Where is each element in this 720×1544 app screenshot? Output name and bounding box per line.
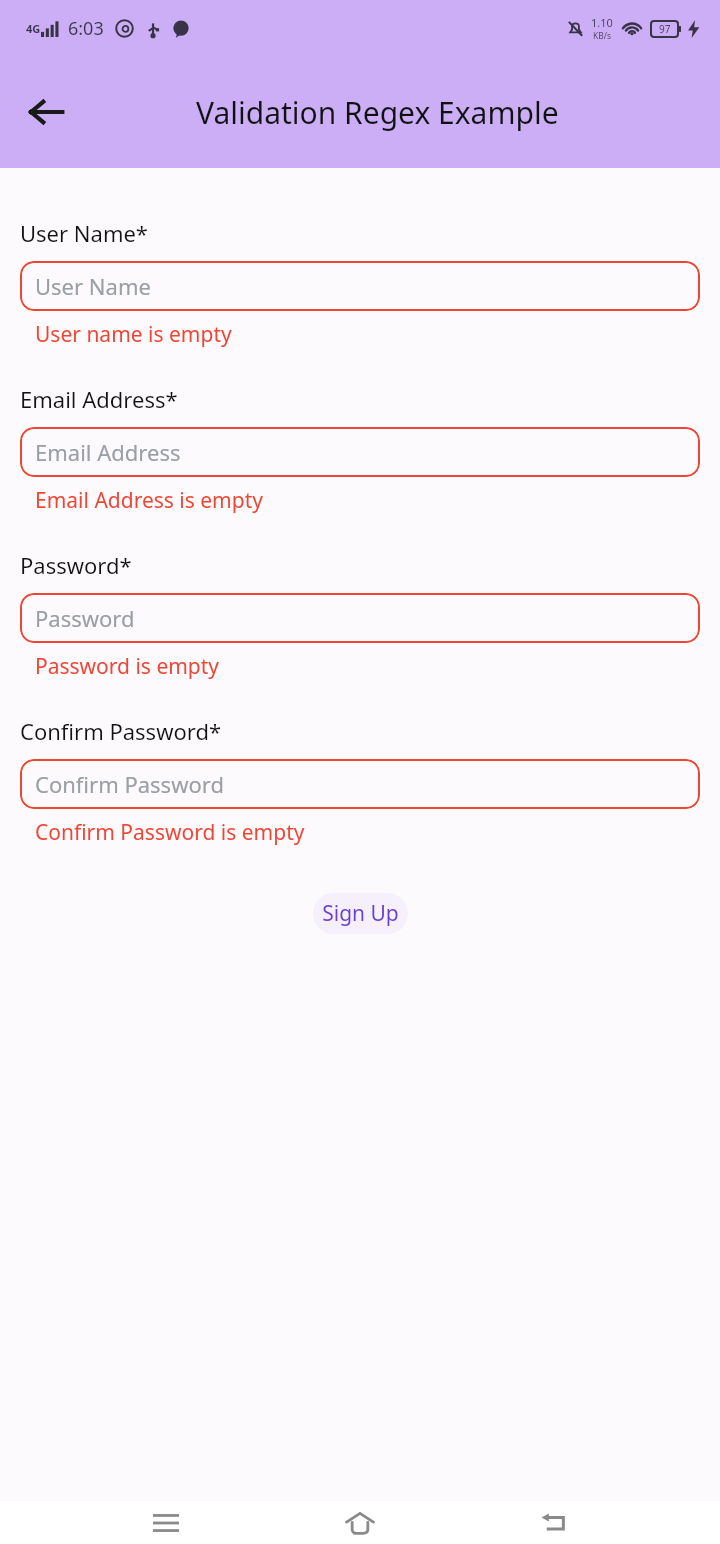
button[interactable]: User Name xyxy=(20,261,700,311)
staticText: Password* xyxy=(20,550,132,580)
staticText: Email Address xyxy=(35,437,181,467)
staticText: Confirm Password xyxy=(35,769,224,799)
staticText: User name is empty xyxy=(35,320,232,349)
staticText: 4G xyxy=(26,21,41,36)
staticText: Password xyxy=(35,603,135,633)
button[interactable]: Password xyxy=(20,593,700,643)
button[interactable]: Recent apps xyxy=(138,1501,194,1544)
button[interactable]: Confirm Password xyxy=(20,759,700,809)
staticText: Validation Regex Example xyxy=(196,92,559,133)
staticText: Confirm Password is empty xyxy=(35,818,305,847)
staticText: Password is empty xyxy=(35,652,220,681)
button[interactable]: Back xyxy=(526,1501,582,1544)
button[interactable]: Home xyxy=(332,1501,388,1544)
button[interactable]: Email Address xyxy=(20,427,700,477)
staticText: KB/s xyxy=(593,30,612,42)
button[interactable]: Back xyxy=(14,80,78,144)
staticText: User Name* xyxy=(20,218,148,248)
staticText: Sign Up xyxy=(322,899,399,928)
staticText: Email Address is empty xyxy=(35,486,263,515)
button[interactable]: Sign Up xyxy=(313,893,408,934)
staticText: 97 xyxy=(659,22,671,36)
staticText: User Name xyxy=(35,271,151,301)
staticText: 6:03 xyxy=(68,16,104,41)
staticText: Email Address* xyxy=(20,384,178,414)
staticText: 1.10 xyxy=(591,15,613,30)
staticText: Confirm Password* xyxy=(20,716,222,746)
